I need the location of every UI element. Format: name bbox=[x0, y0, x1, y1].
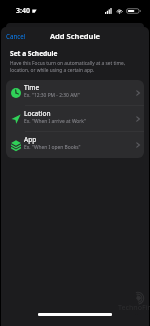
staticText: Ex. "When I open Books" bbox=[24, 144, 81, 151]
staticText: Time bbox=[24, 83, 40, 92]
staticText: Cancel bbox=[6, 32, 26, 40]
staticText: Ex. "When I arrive at Work" bbox=[24, 118, 86, 125]
staticText: 3:40 bbox=[16, 6, 30, 16]
button[interactable]: App bbox=[6, 132, 144, 158]
staticText: Set a Schedule bbox=[10, 49, 58, 58]
staticText: Ex. "12:30 PM - 2:30 AM" bbox=[24, 92, 80, 99]
staticText: Location bbox=[24, 109, 51, 118]
button[interactable]: Time bbox=[6, 80, 144, 106]
staticText: Have this Focus turn on automatically at… bbox=[10, 60, 125, 74]
button[interactable]: Cancel bbox=[1, 29, 34, 43]
staticText: TechnoFino bbox=[118, 303, 150, 313]
button[interactable]: Location bbox=[6, 106, 144, 132]
staticText: Add Schedule bbox=[50, 31, 101, 41]
staticText: App bbox=[24, 135, 37, 144]
